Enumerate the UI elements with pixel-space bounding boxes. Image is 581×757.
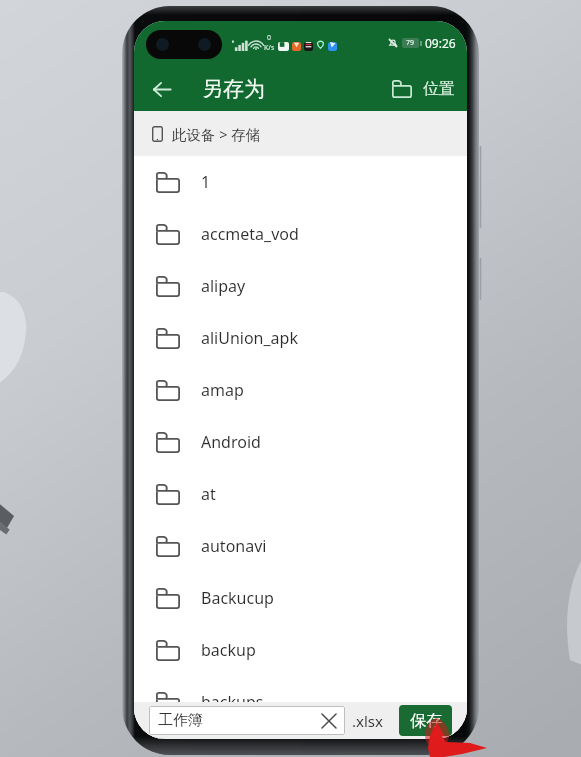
button[interactable]: 保存	[399, 705, 452, 736]
staticText: Backucup	[201, 587, 274, 609]
button[interactable]: Android	[134, 416, 467, 468]
staticText: amap	[201, 379, 244, 401]
button[interactable]: backup	[134, 624, 467, 676]
button[interactable]: amap	[134, 364, 467, 416]
button[interactable]: Back	[141, 68, 183, 110]
staticText: autonavi	[201, 535, 267, 557]
button[interactable]: at	[134, 468, 467, 520]
staticText: 另存为	[202, 76, 265, 102]
staticText: 1	[201, 171, 211, 193]
button[interactable]: Clear text	[316, 708, 342, 734]
staticText: at	[201, 483, 216, 505]
button[interactable]: accmeta_vod	[134, 208, 467, 260]
button[interactable]: alipay	[134, 260, 467, 312]
staticText: alipay	[201, 275, 246, 297]
staticText: 09:26	[425, 35, 456, 51]
button[interactable]: 工作簿	[149, 706, 345, 735]
staticText: 保存	[410, 711, 442, 731]
staticText: Android	[201, 431, 261, 453]
button[interactable]: backups	[134, 676, 467, 728]
staticText: 位置	[423, 79, 455, 99]
staticText: 此设备 > 存储	[172, 124, 261, 144]
staticText: accmeta_vod	[201, 223, 299, 245]
staticText: 79	[406, 38, 415, 48]
staticText: aliUnion_apk	[201, 327, 298, 349]
button[interactable]: aliUnion_apk	[134, 312, 467, 364]
staticText: backup	[201, 639, 256, 661]
button[interactable]: Backucup	[134, 572, 467, 624]
button[interactable]: 位置	[382, 67, 467, 111]
staticText: K/s	[264, 43, 275, 53]
staticText: backups	[201, 691, 264, 713]
button[interactable]: bugreport	[134, 728, 467, 739]
button[interactable]: 此设备 > 存储	[134, 111, 467, 156]
staticText: .xlsx	[352, 711, 383, 731]
staticText: 0	[267, 33, 272, 43]
staticText: 工作簿	[158, 711, 203, 730]
staticText: bugreport	[201, 728, 278, 739]
button[interactable]: autonavi	[134, 520, 467, 572]
button[interactable]: 1	[134, 156, 467, 208]
